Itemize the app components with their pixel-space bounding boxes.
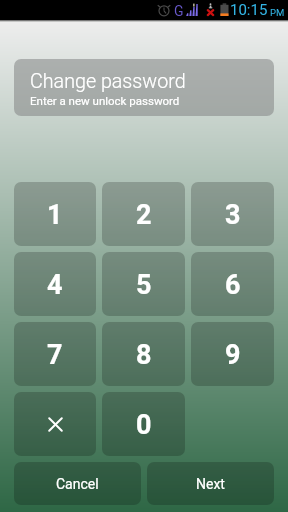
staticText: 3 [225, 199, 241, 231]
staticText: 10:15 [230, 1, 268, 19]
button[interactable]: 9 [191, 322, 274, 386]
staticText: Enter a new unlock password [30, 94, 180, 107]
button[interactable]: 0 [102, 392, 185, 456]
staticText: 7 [47, 339, 63, 371]
button[interactable]: 8 [102, 322, 185, 386]
staticText: G [174, 3, 184, 19]
staticText: 1 [47, 199, 63, 231]
button[interactable]: 6 [191, 252, 274, 316]
staticText: 0 [136, 409, 152, 441]
button[interactable]: 3 [191, 182, 274, 246]
button[interactable]: Cancel [14, 462, 141, 505]
button[interactable]: Delete [14, 392, 96, 456]
button[interactable]: 1 [14, 182, 96, 246]
staticText: PM [270, 7, 285, 18]
button[interactable]: 7 [14, 322, 96, 386]
staticText: 8 [136, 339, 152, 371]
staticText: 5 [136, 269, 152, 301]
button[interactable]: 5 [102, 252, 185, 316]
staticText: Change password [30, 70, 186, 93]
staticText: 2 [136, 199, 152, 231]
staticText: 4 [47, 269, 63, 301]
staticText: 9 [225, 339, 241, 371]
button[interactable]: Next [147, 462, 274, 505]
staticText: Next [196, 476, 225, 492]
button[interactable]: 4 [14, 252, 96, 316]
staticText: 6 [225, 269, 241, 301]
button[interactable]: 2 [102, 182, 185, 246]
staticText: Cancel [56, 476, 99, 492]
